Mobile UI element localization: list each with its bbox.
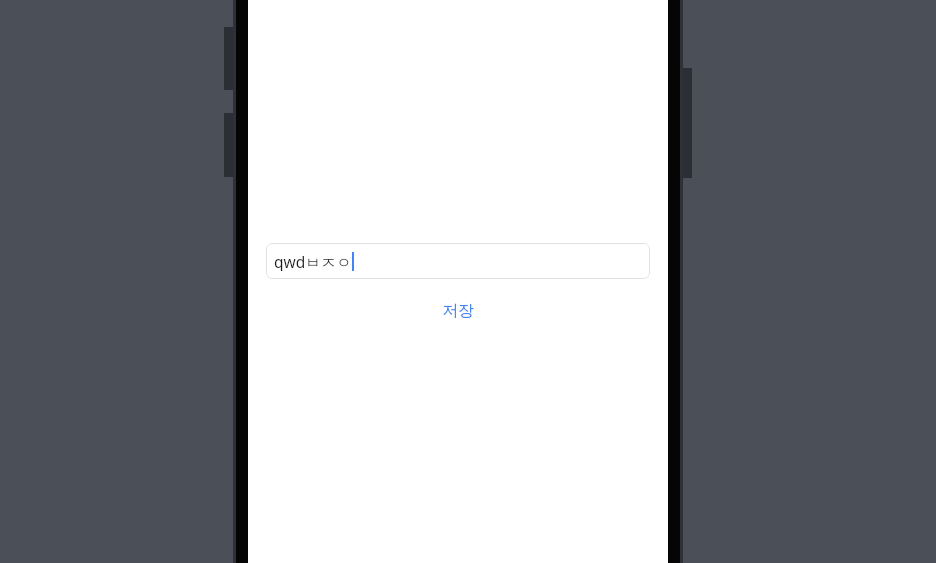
staticText: 저장 <box>442 301 474 321</box>
button[interactable]: 저장 <box>266 297 650 325</box>
button[interactable]: qwdㅂㅈㅇ <box>266 243 650 279</box>
staticText: qwdㅂㅈㅇ <box>274 251 352 271</box>
